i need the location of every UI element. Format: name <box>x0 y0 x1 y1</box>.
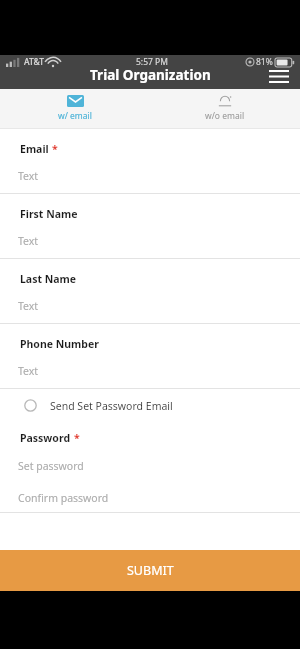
staticText: w/ email <box>58 110 92 122</box>
button[interactable]: Send Set Password Email <box>0 389 300 422</box>
button[interactable]: w/o email <box>150 89 300 128</box>
staticText: Phone Number <box>20 337 99 351</box>
button[interactable]: Last Name <box>0 259 300 323</box>
staticText: Text <box>18 169 39 183</box>
staticText: 5:57 PM <box>136 56 168 68</box>
staticText: Send Set Password Email <box>50 399 173 413</box>
staticText: Set password <box>18 459 84 473</box>
staticText: Last Name <box>20 272 77 286</box>
staticText: * <box>74 431 80 445</box>
staticText: Email <box>20 142 49 156</box>
staticText: Text <box>18 299 39 313</box>
staticText: w/o email <box>205 110 245 122</box>
button[interactable]: w/ email <box>0 89 150 128</box>
button[interactable]: Email <box>0 129 300 193</box>
staticText: First Name <box>20 207 78 221</box>
staticText: Confirm password <box>18 491 109 505</box>
staticText: Password <box>20 431 71 445</box>
staticText: Text <box>18 364 39 378</box>
button[interactable]: Menu <box>266 66 292 86</box>
button[interactable]: SUBMIT <box>0 550 300 591</box>
staticText: SUBMIT <box>127 562 174 579</box>
button[interactable]: Confirm password <box>0 491 300 512</box>
button[interactable]: Set password <box>0 459 300 481</box>
staticText: Text <box>18 234 39 248</box>
staticText: 81% <box>256 56 273 68</box>
staticText: AT&T <box>24 56 45 68</box>
button[interactable]: Phone Number <box>0 324 300 388</box>
staticText: * <box>52 142 58 156</box>
button[interactable]: First Name <box>0 194 300 258</box>
staticText: Trial Organization <box>90 66 211 84</box>
